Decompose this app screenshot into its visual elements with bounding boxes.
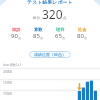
staticText: 20000 (3, 70, 13, 74)
staticText: 点 (18, 36, 21, 40)
staticText: 算数 (34, 27, 43, 32)
staticText: 点 (63, 16, 67, 21)
staticText: 国語 (12, 27, 21, 32)
staticText: 80 (77, 32, 84, 40)
button[interactable]: 算数 (27, 27, 49, 40)
staticText: 社会 (78, 27, 87, 32)
staticText: 点 (84, 36, 87, 40)
button[interactable]: 社会 (71, 27, 93, 40)
staticText: 点 (40, 36, 43, 40)
staticText: 点 (62, 36, 65, 40)
button[interactable]: 理科 (49, 27, 71, 40)
staticText: 65 (55, 32, 62, 40)
staticText: テスト結果レポート (27, 0, 73, 4)
staticText: 理科 (56, 27, 65, 32)
button[interactable]: 成績位置（総合） (29, 51, 71, 58)
staticText: 成績位置（総合） (34, 52, 66, 57)
staticText: 90 (11, 32, 18, 40)
staticText: 85 (33, 32, 40, 40)
staticText: 15000 (3, 81, 13, 85)
staticText: 受験者数(人) (3, 63, 21, 67)
staticText: 総合 (33, 16, 41, 21)
staticText: 10000 (3, 92, 13, 96)
staticText: 320 (42, 6, 63, 22)
button[interactable]: 国語 (5, 27, 27, 40)
